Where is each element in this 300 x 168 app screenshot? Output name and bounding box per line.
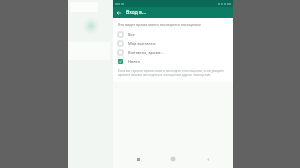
- button[interactable]: Back: [114, 8, 123, 17]
- button[interactable]: Мои контакты: [118, 39, 229, 48]
- staticText: Если вы скроете время своего последнего …: [118, 69, 229, 77]
- staticText: Все: [128, 32, 135, 37]
- button[interactable]: Recent apps: [128, 152, 148, 166]
- button[interactable]: Все: [118, 30, 229, 39]
- staticText: Контакты, кроме…: [128, 50, 164, 55]
- staticText: Кто видит время моего последнего посещен…: [118, 22, 201, 27]
- staticText: Мои контакты: [128, 41, 156, 46]
- button[interactable]: Home: [163, 152, 183, 166]
- staticText: Вход в…: [126, 9, 147, 16]
- button[interactable]: Контакты, кроме…: [118, 48, 229, 57]
- staticText: Никто: [128, 59, 140, 64]
- button[interactable]: Никто: [118, 57, 229, 66]
- button[interactable]: Back: [198, 152, 218, 166]
